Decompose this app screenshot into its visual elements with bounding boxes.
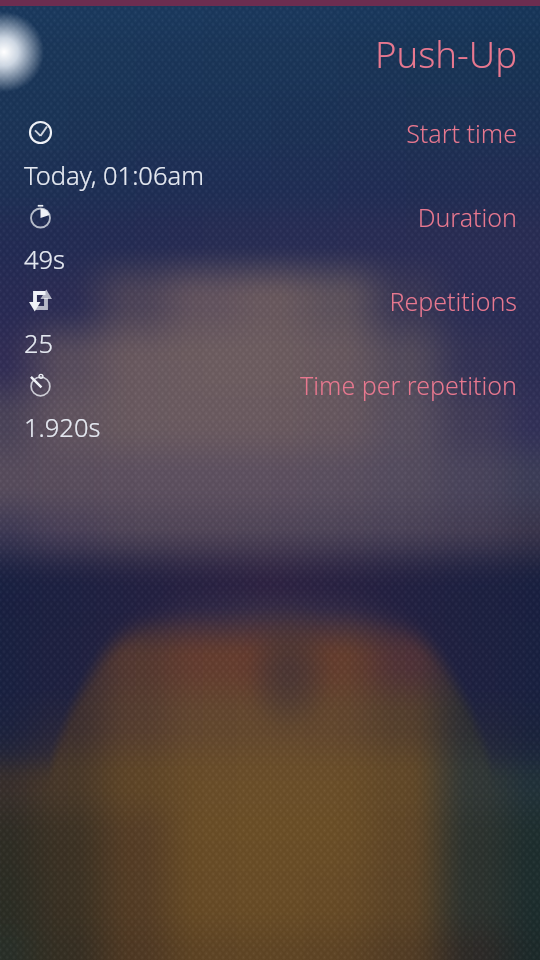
staticText: Push-Up — [0, 29, 517, 79]
button[interactable]: Time per repetition — [0, 360, 540, 444]
staticText: Duration — [0, 200, 517, 234]
staticText: Today, 01:06am — [24, 158, 204, 193]
staticText: 1.920s — [24, 410, 101, 445]
staticText: Repetitions — [0, 284, 517, 318]
staticText: 25 — [24, 326, 54, 361]
staticText: Start time — [0, 116, 517, 150]
button[interactable]: Repetitions — [0, 276, 540, 360]
button[interactable]: Duration — [0, 192, 540, 276]
staticText: 49s — [24, 242, 66, 277]
staticText: Time per repetition — [0, 368, 517, 402]
button[interactable]: Start time — [0, 108, 540, 192]
